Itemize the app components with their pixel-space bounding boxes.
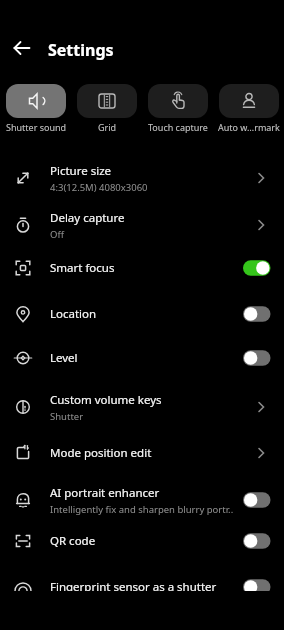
staticText: Touch capture [148, 121, 208, 133]
staticText: Picture size [50, 163, 112, 179]
button[interactable]: Level [0, 335, 284, 381]
staticText: Fingerprint sensor as a shutter [50, 579, 217, 595]
staticText: Location [50, 306, 97, 322]
button[interactable]: AI portrait enhancer [0, 477, 284, 523]
staticText: Off [50, 228, 64, 241]
button[interactable]: Delay capture [0, 202, 284, 248]
button[interactable]: Fingerprint sensor as a shutter [0, 564, 284, 610]
button[interactable]: Smart focus [0, 245, 284, 291]
staticText: Settings [48, 39, 114, 61]
button[interactable] [77, 84, 137, 118]
button[interactable] [6, 84, 66, 118]
staticText: Custom volume keys [50, 392, 162, 408]
staticText: QR code [50, 533, 96, 549]
button[interactable] [6, 38, 38, 58]
staticText: Grid [98, 121, 117, 133]
staticText: Delay capture [50, 210, 125, 226]
button[interactable]: Location [0, 291, 284, 337]
button[interactable] [219, 84, 279, 118]
staticText: Mode position edit [50, 445, 152, 461]
staticText: Shutter [50, 410, 84, 423]
staticText: AI portrait enhancer [50, 485, 160, 501]
staticText: 4:3(12.5M) 4080x3060 [50, 181, 148, 194]
button[interactable] [148, 84, 208, 118]
staticText: Level [50, 350, 78, 366]
button[interactable]: Mode position edit [0, 430, 284, 476]
button[interactable]: QR code [0, 518, 284, 564]
staticText: Intelligently fix and sharpen blurry por… [50, 503, 234, 516]
button[interactable]: Picture size [0, 155, 284, 201]
staticText: Smart focus [50, 260, 115, 276]
staticText: Auto w…rmark [218, 121, 280, 133]
staticText: Shutter sound [6, 121, 67, 133]
button[interactable]: Custom volume keys [0, 384, 284, 430]
